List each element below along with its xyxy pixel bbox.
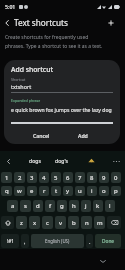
button[interactable]: m <box>94 216 105 229</box>
button[interactable]: Backspace <box>107 216 121 229</box>
button[interactable]: Emoji <box>88 157 95 164</box>
button[interactable]: 8 <box>87 172 97 183</box>
staticText: l <box>109 202 111 210</box>
staticText: i <box>91 187 93 195</box>
staticText: 7 <box>78 174 82 182</box>
staticText: x <box>33 219 37 227</box>
staticText: t <box>55 187 58 195</box>
staticText: 1 <box>5 174 9 182</box>
button[interactable]: English (US) <box>31 234 84 248</box>
button[interactable]: 5 <box>51 172 61 183</box>
staticText: , <box>24 238 26 245</box>
button[interactable]: z <box>16 216 27 229</box>
button[interactable]: 9 <box>99 172 109 183</box>
button[interactable]: , <box>21 234 29 248</box>
staticText: y <box>66 187 70 195</box>
button[interactable]: Add shortcut <box>105 17 117 29</box>
staticText: m <box>97 219 103 227</box>
button[interactable]: o <box>99 186 109 196</box>
staticText: Add <box>78 132 88 139</box>
staticText: 5:01 <box>5 3 16 10</box>
staticText: s <box>24 202 27 210</box>
staticText: dog's <box>55 157 69 164</box>
button[interactable]: 1 <box>1 172 12 183</box>
staticText: 0 <box>114 174 118 182</box>
button[interactable]: j <box>81 200 91 212</box>
button[interactable]: v <box>55 216 66 229</box>
staticText: e <box>30 187 34 195</box>
staticText: k <box>96 202 100 210</box>
button[interactable]: dogs <box>27 155 44 166</box>
staticText: Expanded phrase <box>11 98 41 103</box>
button[interactable]: 6 <box>63 172 73 183</box>
staticText: p <box>114 187 118 195</box>
button[interactable]: 7 <box>75 172 85 183</box>
staticText: Text shortcuts <box>14 17 68 28</box>
button[interactable]: dog's <box>53 155 71 166</box>
staticText: Create shortcuts for frequently used phr… <box>5 34 107 49</box>
staticText: txtshort <box>11 83 32 90</box>
staticText: v <box>59 219 63 227</box>
staticText: 6 <box>66 174 70 182</box>
button[interactable]: Add <box>74 130 92 141</box>
button[interactable]: q <box>1 186 12 196</box>
staticText: 5 <box>54 174 58 182</box>
button[interactable]: l <box>105 200 115 212</box>
staticText: r <box>43 187 46 195</box>
staticText: d <box>36 202 40 210</box>
button[interactable]: g <box>57 200 67 212</box>
button[interactable]: f <box>45 200 55 212</box>
staticText: dogs <box>29 157 42 164</box>
staticText: Done <box>102 238 115 245</box>
button[interactable]: r <box>39 186 49 196</box>
button[interactable]: 0 <box>111 172 121 183</box>
button[interactable]: u <box>75 186 85 196</box>
staticText: u <box>78 187 82 195</box>
button[interactable]: t <box>51 186 61 196</box>
button[interactable]: n <box>81 216 92 229</box>
button[interactable]: More options <box>111 156 121 166</box>
staticText: z <box>20 219 23 227</box>
staticText: . <box>89 238 91 245</box>
button[interactable]: Cancel <box>29 130 54 141</box>
staticText: Shortcut <box>11 77 26 82</box>
staticText: b <box>72 219 76 227</box>
button[interactable]: 3 <box>27 172 37 183</box>
staticText: w <box>17 187 22 195</box>
staticText: g <box>60 202 64 210</box>
button[interactable]: Shift <box>1 216 14 229</box>
button[interactable]: e <box>27 186 37 196</box>
staticText: 8 <box>90 174 94 182</box>
staticText: j <box>85 202 87 210</box>
staticText: n <box>85 219 89 227</box>
button[interactable]: d <box>33 200 43 212</box>
staticText: English (US) <box>45 238 70 244</box>
staticText: o <box>102 187 106 195</box>
button[interactable]: Previous suggestions <box>3 156 13 166</box>
staticText: h <box>72 202 76 210</box>
button[interactable]: s <box>20 200 31 212</box>
button[interactable]: c <box>42 216 53 229</box>
button[interactable]: . <box>86 234 93 248</box>
button[interactable]: y <box>63 186 73 196</box>
button[interactable]: i <box>87 186 97 196</box>
staticText: !#1 <box>7 238 14 244</box>
staticText: Cancel <box>33 132 50 139</box>
button[interactable]: 2 <box>14 172 25 183</box>
button[interactable]: Navigate up <box>1 17 13 29</box>
button[interactable]: b <box>68 216 79 229</box>
button[interactable]: x <box>29 216 40 229</box>
button[interactable]: Hide keyboard <box>98 256 108 266</box>
button[interactable]: w <box>14 186 25 196</box>
staticText: 3 <box>30 174 34 182</box>
staticText: q <box>5 187 9 195</box>
button[interactable]: 4 <box>39 172 49 183</box>
staticText: c <box>46 219 49 227</box>
button[interactable]: k <box>93 200 103 212</box>
staticText: 4 <box>42 174 46 182</box>
button[interactable]: h <box>69 200 79 212</box>
button[interactable]: !#1 <box>1 234 19 248</box>
button[interactable]: p <box>111 186 121 196</box>
button[interactable]: Done <box>95 234 121 248</box>
button[interactable]: a <box>7 200 18 212</box>
